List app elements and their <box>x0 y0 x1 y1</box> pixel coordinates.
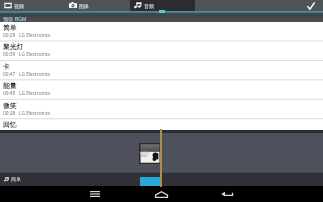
button[interactable]: 简单 <box>0 22 323 41</box>
staticText: 图像 <box>79 3 89 9</box>
button[interactable]: 视频 <box>0 0 65 11</box>
staticText: 微笑 <box>3 102 17 110</box>
button[interactable]: 卡 <box>0 61 323 80</box>
button[interactable]: Done <box>299 0 323 11</box>
staticText: 能量 <box>3 82 17 90</box>
staticText: LG Electronics <box>19 71 51 78</box>
staticText: 00:47 <box>3 71 16 78</box>
button[interactable]: 聚光灯 <box>0 41 323 60</box>
button[interactable]: 微笑 <box>0 100 323 119</box>
staticText: 卡 <box>3 63 10 71</box>
button[interactable]: 回忆 <box>0 119 323 138</box>
staticText: 预设 BGM <box>3 15 27 22</box>
staticText: LG Electronics <box>19 51 51 58</box>
button[interactable]: Home <box>128 186 194 202</box>
button[interactable]: Back <box>194 186 260 202</box>
staticText: LG Electronics <box>19 90 51 97</box>
staticText: 聚光灯 <box>3 43 24 51</box>
staticText: 简单 <box>11 176 21 182</box>
staticText: 视频 <box>14 3 24 9</box>
staticText: 音频 <box>144 3 154 9</box>
staticText: 简单 <box>3 24 17 32</box>
button[interactable]: 能量 <box>0 80 323 99</box>
staticText: LG Electronics <box>19 129 51 136</box>
button[interactable]: 图像 <box>65 0 130 11</box>
staticText: LG Electronics <box>19 32 51 39</box>
staticText: 00:45 <box>3 90 16 97</box>
staticText: 00:35 <box>3 129 16 136</box>
staticText: LG Electronics <box>19 110 51 117</box>
staticText: 00:39 <box>3 51 16 58</box>
staticText: 00:28 <box>3 110 16 117</box>
staticText: 回忆 <box>3 121 17 129</box>
button[interactable]: Recent apps <box>62 186 128 202</box>
button[interactable]: 音频 <box>130 0 195 11</box>
staticText: 00:28 <box>3 32 16 39</box>
